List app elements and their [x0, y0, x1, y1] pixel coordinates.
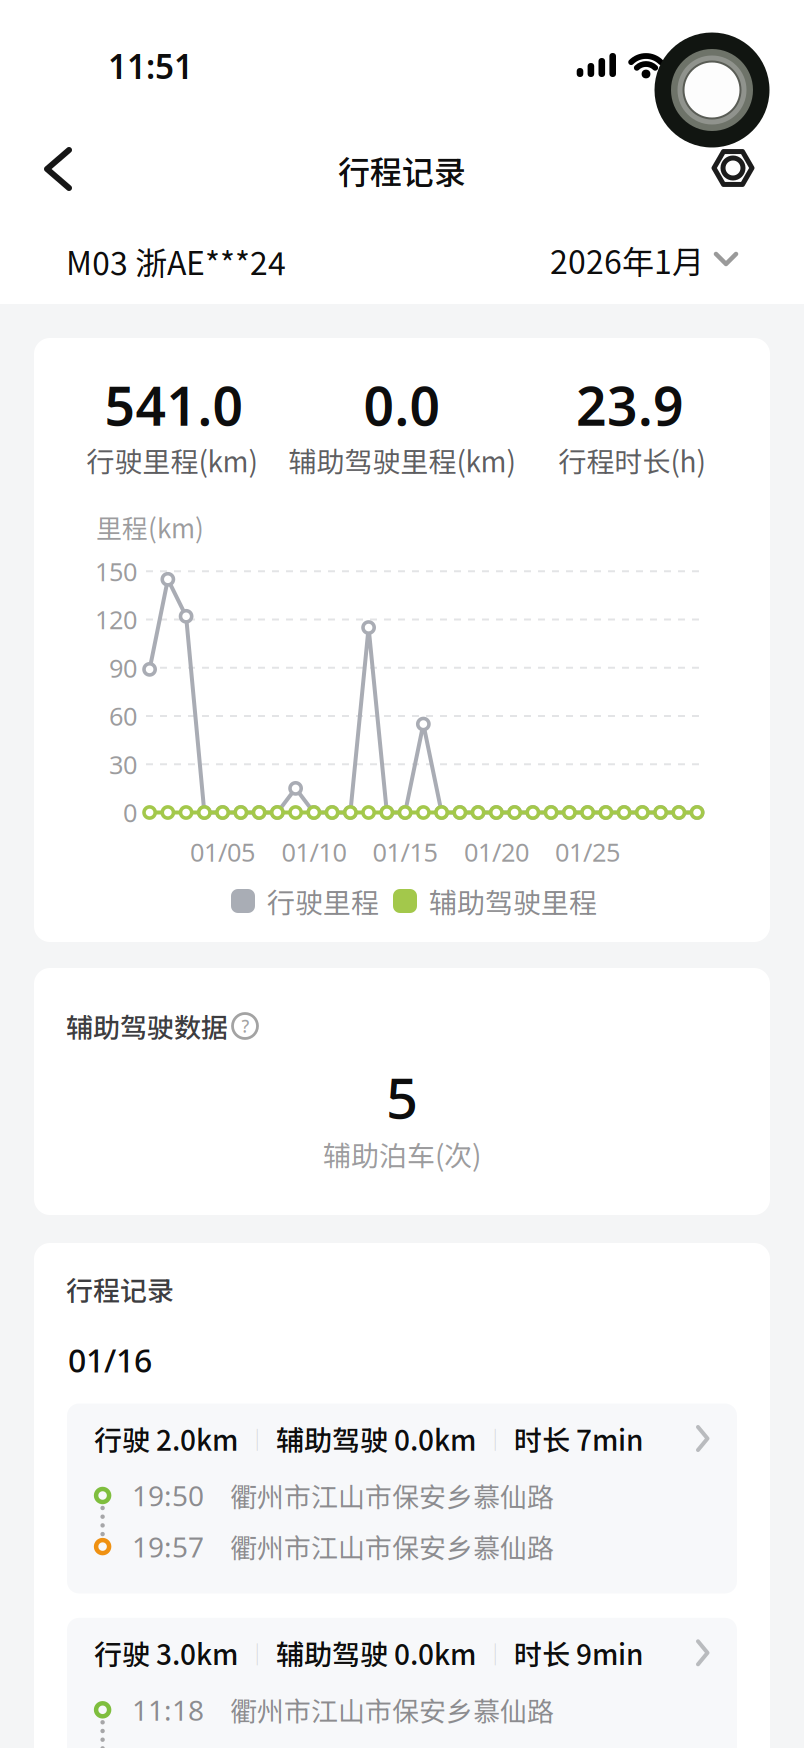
- staticText: 行程记录: [66, 1269, 174, 1309]
- staticText: 衢州市江山市保安乡慕仙路: [230, 1690, 554, 1729]
- staticText: M03 浙AE***24: [66, 238, 286, 284]
- staticText: 行驶 2.0km: [94, 1418, 238, 1459]
- staticText: 行驶里程(km): [86, 440, 257, 480]
- staticText: 辅助泊车(次): [323, 1134, 481, 1174]
- staticText: 0.0: [363, 370, 440, 440]
- staticText: 11:51: [108, 44, 193, 88]
- button[interactable]: Back: [39, 147, 83, 191]
- staticText: ｜: [246, 1423, 268, 1454]
- staticText: 150: [95, 554, 137, 588]
- staticText: ?: [241, 1014, 249, 1037]
- staticText: 行驶 3.0km: [94, 1632, 238, 1673]
- staticText: 行程记录: [338, 147, 466, 193]
- staticText: 01/25: [555, 835, 620, 869]
- staticText: 里程(km): [96, 508, 204, 546]
- staticText: 0: [123, 796, 137, 829]
- staticText: 衢州市江山市保安乡慕仙路: [230, 1527, 554, 1566]
- staticText: 120: [95, 603, 137, 636]
- staticText: 2026年1月: [550, 237, 704, 283]
- staticText: 时长 9min: [514, 1632, 643, 1673]
- staticText: ｜: [246, 1637, 268, 1669]
- staticText: 衢州市江山市保安乡慕仙路: [230, 1476, 554, 1515]
- staticText: ｜: [484, 1423, 506, 1454]
- staticText: 01/20: [464, 835, 529, 869]
- staticText: 60: [109, 699, 137, 733]
- staticText: 时长 7min: [514, 1418, 643, 1459]
- button[interactable]: Settings: [705, 140, 761, 196]
- staticText: 01/10: [281, 835, 346, 869]
- button[interactable]: 2026年1月: [550, 237, 738, 283]
- staticText: 5: [386, 1060, 418, 1134]
- staticText: 辅助驾驶 0.0km: [276, 1632, 476, 1673]
- staticText: 11:18: [132, 1691, 204, 1728]
- button[interactable]: 行驶 3.0km: [67, 1618, 737, 1748]
- staticText: 19:57: [132, 1528, 204, 1565]
- staticText: 23.9: [576, 370, 684, 440]
- staticText: 辅助驾驶里程: [429, 881, 597, 921]
- staticText: 辅助驾驶 0.0km: [276, 1418, 476, 1459]
- staticText: 30: [109, 747, 137, 781]
- staticText: 行驶里程: [267, 881, 379, 921]
- staticText: 01/16: [68, 1339, 152, 1381]
- staticText: 19:50: [132, 1477, 204, 1514]
- staticText: 01/05: [190, 835, 255, 869]
- staticText: 90: [109, 651, 137, 685]
- staticText: 01/15: [373, 835, 438, 869]
- button[interactable]: 行驶 2.0km: [67, 1403, 737, 1593]
- staticText: ｜: [484, 1637, 506, 1669]
- staticText: 行程时长(h): [558, 440, 705, 480]
- staticText: 541.0: [104, 370, 243, 440]
- staticText: 辅助驾驶里程(km): [288, 440, 515, 480]
- button[interactable]: 辅助驾驶数据说明: [231, 1012, 259, 1040]
- staticText: 辅助驾驶数据: [66, 1006, 228, 1046]
